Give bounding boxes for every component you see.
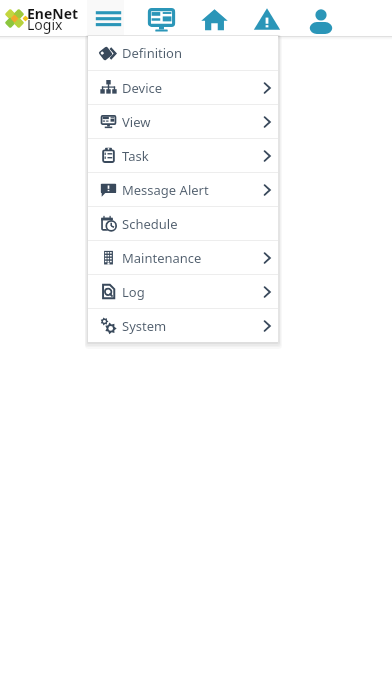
button[interactable]: Account (297, 0, 345, 36)
button[interactable]: View (88, 105, 278, 138)
button[interactable]: Dashboard (137, 0, 185, 36)
button[interactable]: Schedule (88, 207, 278, 240)
button[interactable]: Log (88, 275, 278, 308)
staticText: Schedule (122, 215, 178, 233)
button[interactable]: System (88, 309, 278, 342)
staticText: Message Alert (122, 181, 209, 199)
staticText: Task (122, 147, 149, 165)
staticText: View (122, 113, 151, 131)
button[interactable]: EneNet (0, 0, 84, 33)
button[interactable]: Message Alert (88, 173, 278, 206)
button[interactable]: Maintenance (88, 241, 278, 274)
staticText: Logix (27, 15, 63, 34)
button[interactable]: Device (88, 71, 278, 104)
staticText: Definition (122, 44, 182, 62)
button[interactable]: Definition (88, 36, 278, 70)
button[interactable]: Task (88, 139, 278, 172)
staticText: Device (122, 79, 163, 97)
button[interactable]: Alerts (243, 0, 291, 36)
button[interactable]: Menu (84, 0, 132, 36)
staticText: EneNet (27, 4, 79, 23)
staticText: System (122, 317, 167, 335)
staticText: Log (122, 283, 145, 301)
staticText: Maintenance (122, 249, 202, 267)
button[interactable]: Home (190, 0, 238, 36)
